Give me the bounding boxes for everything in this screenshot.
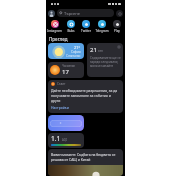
staticText: Часовник <box>62 64 75 68</box>
staticText: 17 <box>62 68 69 76</box>
button[interactable]: 21° <box>48 43 84 59</box>
staticText: Преглед <box>49 36 68 42</box>
button[interactable]: Instagram <box>47 20 62 33</box>
staticText: 21 <box>90 46 97 54</box>
button[interactable]: Вubs <box>63 20 78 33</box>
staticText: Съвет <box>57 82 66 86</box>
button[interactable]: 1.1 <box>48 133 84 148</box>
button[interactable]: Съвет <box>48 80 123 113</box>
button[interactable]: Часовник <box>48 62 84 78</box>
staticText: AQI <box>62 138 67 142</box>
staticText: сеп <box>98 49 103 53</box>
button[interactable]: Play <box>109 20 124 33</box>
staticText: Настройки <box>51 105 69 110</box>
button[interactable]: Twitter <box>78 20 93 33</box>
button[interactable]: 21 <box>87 43 123 77</box>
staticText: 21° <box>74 45 81 50</box>
staticText: Слънчево <box>66 54 81 58</box>
button[interactable]: Google Lens <box>116 10 123 17</box>
button[interactable]: Търсене <box>57 9 114 17</box>
staticText: Съдържанието ще се зареди след малко, мо… <box>90 56 121 68</box>
staticText: 1.1 <box>51 134 61 143</box>
staticText: Търсене <box>64 11 80 16</box>
staticText: Вubs <box>67 29 75 33</box>
button[interactable] <box>48 115 84 131</box>
staticText: Instagram <box>47 29 62 33</box>
staticText: Telegram <box>95 29 109 33</box>
staticText: Дайте необходимите разрешения, за да пол… <box>51 88 120 103</box>
staticText: Play <box>114 29 120 33</box>
button[interactable]: Важен момент: Съдбата на бюджета се реша… <box>48 149 123 176</box>
staticText: София <box>71 50 81 54</box>
staticText: Важен момент: Съдбата на бюджета се реша… <box>51 152 120 162</box>
button[interactable]: Telegram <box>94 20 109 33</box>
staticText: Twitter <box>81 29 91 33</box>
button[interactable]: Profile <box>48 10 55 17</box>
